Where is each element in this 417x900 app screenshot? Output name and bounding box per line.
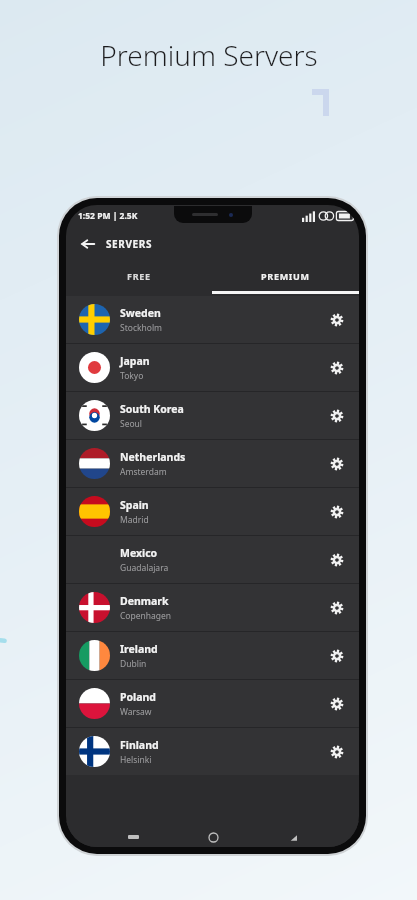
staticText: Poland — [120, 690, 156, 704]
button[interactable]: PREMIUM — [212, 261, 359, 291]
button[interactable]: Settings for Mexico — [326, 549, 348, 571]
staticText: SERVERS — [106, 237, 153, 251]
staticText: Madrid — [120, 514, 149, 526]
staticText: FREE — [127, 270, 151, 282]
button[interactable]: Settings for Ireland — [326, 645, 348, 667]
staticText: South Korea — [120, 402, 184, 416]
staticText: Ireland — [120, 642, 158, 656]
staticText: Seoul — [120, 418, 143, 430]
button[interactable]: Spain — [66, 488, 359, 535]
staticText: Denmark — [120, 594, 169, 608]
staticText: Finland — [120, 738, 159, 752]
button[interactable]: Settings for Poland — [326, 693, 348, 715]
staticText: Mexico — [120, 546, 158, 560]
button[interactable]: Settings for Spain — [326, 501, 348, 523]
button[interactable]: Finland — [66, 728, 359, 775]
button[interactable]: Back — [77, 233, 99, 255]
button[interactable]: Poland — [66, 680, 359, 727]
button[interactable]: Sweden — [66, 296, 359, 343]
staticText: Tokyo — [120, 370, 144, 382]
staticText: Amsterdam — [120, 466, 167, 478]
button[interactable]: Settings for Sweden — [326, 309, 348, 331]
button[interactable]: South Korea — [66, 392, 359, 439]
staticText: Guadalajara — [120, 562, 169, 574]
staticText: Helsinki — [120, 754, 152, 766]
button[interactable]: Settings for Netherlands — [326, 453, 348, 475]
staticText: Netherlands — [120, 450, 186, 464]
staticText: Japan — [120, 354, 150, 368]
button[interactable]: Back — [280, 830, 304, 844]
button[interactable]: Home — [201, 830, 225, 844]
button[interactable]: Settings for South Korea — [326, 405, 348, 427]
staticText: Spain — [120, 498, 149, 512]
staticText: 1:52 PM | 2.5K — [78, 210, 138, 222]
button[interactable]: Japan — [66, 344, 359, 391]
button[interactable]: Netherlands — [66, 440, 359, 487]
button[interactable]: Denmark — [66, 584, 359, 631]
button[interactable]: Settings for Denmark — [326, 597, 348, 619]
button[interactable]: Settings for Japan — [326, 357, 348, 379]
button[interactable]: Mexico — [66, 536, 359, 583]
staticText: Stockholm — [120, 322, 163, 334]
staticText: Copenhagen — [120, 610, 172, 622]
button[interactable]: Settings for Finland — [326, 741, 348, 763]
button[interactable]: Recents — [121, 830, 145, 844]
staticText: PREMIUM — [261, 270, 310, 282]
staticText: Warsaw — [120, 706, 152, 718]
staticText: Dublin — [120, 658, 147, 670]
staticText: Premium Servers — [100, 36, 318, 74]
staticText: Sweden — [120, 306, 161, 320]
button[interactable]: Ireland — [66, 632, 359, 679]
button[interactable]: FREE — [66, 261, 212, 291]
